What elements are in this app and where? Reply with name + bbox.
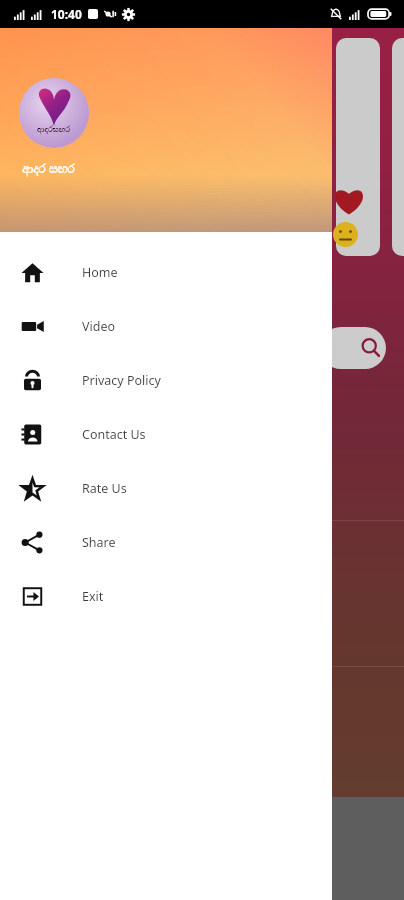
button[interactable]: Share	[0, 515, 332, 569]
button[interactable]: Exit	[0, 569, 332, 623]
staticText: Contact Us	[82, 426, 146, 443]
button[interactable]: Contact Us	[0, 407, 332, 461]
staticText: Privacy Policy	[82, 372, 161, 389]
staticText: Video	[82, 318, 116, 335]
staticText: ආදර සඟර	[22, 160, 75, 176]
staticText: Home	[82, 264, 118, 281]
button[interactable]: Home	[0, 245, 332, 299]
staticText: Rate Us	[82, 480, 127, 497]
staticText: Exit	[82, 588, 104, 605]
staticText: ආදරසඟර	[37, 126, 71, 134]
button[interactable]: Search	[320, 327, 386, 369]
staticText: Share	[82, 534, 116, 551]
staticText: 10:40	[51, 6, 82, 22]
button[interactable]: Rate Us	[0, 461, 332, 515]
button[interactable]: Video	[0, 299, 332, 353]
button[interactable]: Privacy Policy	[0, 353, 332, 407]
